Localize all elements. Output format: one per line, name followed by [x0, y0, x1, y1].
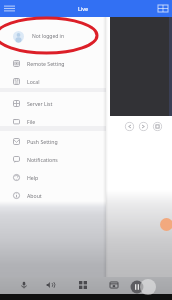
- staticText: Live: [78, 5, 89, 12]
- button[interactable]: Volume: [43, 278, 57, 292]
- staticText: About: [27, 192, 42, 199]
- staticText: Server List: [27, 100, 53, 107]
- button[interactable]: About: [0, 186, 106, 204]
- button[interactable]: Help: [0, 168, 106, 186]
- staticText: Local: [27, 78, 40, 85]
- button[interactable]: Previous: [125, 122, 134, 131]
- button[interactable]: File: [0, 112, 106, 130]
- button[interactable]: Capture: [153, 122, 162, 131]
- button[interactable]: Local: [0, 72, 106, 90]
- button[interactable]: Next: [139, 122, 148, 131]
- staticText: Remote Setting: [27, 60, 65, 67]
- button[interactable]: Playback: [107, 278, 121, 292]
- button[interactable]: Notifications: [0, 150, 106, 168]
- staticText: File: [27, 118, 36, 125]
- button[interactable]: Push Setting: [0, 132, 106, 150]
- button[interactable]: Menu: [2, 1, 17, 16]
- staticText: Push Setting: [27, 138, 58, 145]
- button[interactable]: Not logged in: [0, 25, 106, 47]
- button[interactable]: Layout: [155, 1, 170, 16]
- button[interactable]: Pause: [130, 280, 144, 294]
- button[interactable]: Multi view: [76, 278, 90, 292]
- staticText: Help: [27, 174, 39, 181]
- button[interactable]: Remote Setting: [0, 54, 106, 72]
- button[interactable]: Add: [160, 218, 172, 231]
- staticText: Not logged in: [32, 33, 64, 40]
- staticText: Notifications: [27, 156, 58, 163]
- button[interactable]: Microphone: [17, 278, 31, 292]
- button[interactable]: Server List: [0, 94, 106, 112]
